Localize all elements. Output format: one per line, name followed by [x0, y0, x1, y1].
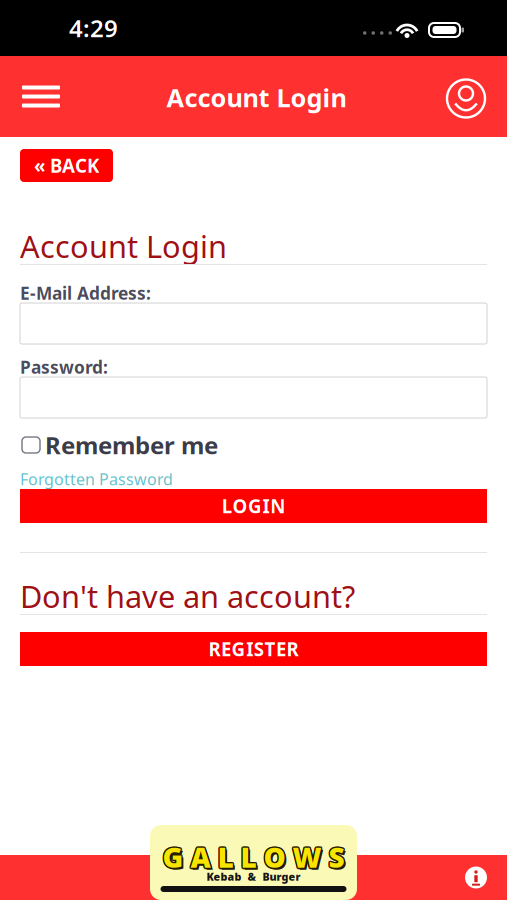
button[interactable]: Info — [462, 863, 490, 891]
staticText: REGISTER — [208, 637, 299, 661]
staticText: LOGIN — [222, 494, 285, 518]
staticText: Remember me — [45, 429, 218, 461]
staticText: G A L L O W S — [161, 838, 343, 876]
button[interactable]: Forgotten Password — [20, 472, 173, 486]
staticText: G A L L O W S — [164, 838, 346, 876]
staticText: « BACK — [34, 153, 99, 178]
staticText: 4:29 — [69, 12, 118, 44]
button[interactable]: « BACK — [20, 149, 113, 182]
staticText: Forgotten Password — [20, 468, 173, 490]
staticText: G A L L O W S — [161, 837, 343, 875]
staticText: G A L L O W S — [164, 840, 346, 878]
staticText: Kebab & Burger — [206, 869, 300, 884]
staticText: Account Login — [20, 226, 227, 266]
staticText: G A L L O W S — [162, 837, 344, 874]
button[interactable]: Remember me — [20, 435, 218, 455]
staticText: G A L L O W S — [161, 839, 343, 877]
button[interactable]: Account — [437, 65, 495, 127]
button[interactable]: LOGIN — [20, 489, 487, 523]
staticText: G A L L O W S — [163, 837, 345, 875]
staticText: E-Mail Address: — [20, 281, 151, 304]
staticText: Password: — [20, 355, 108, 378]
button[interactable]: Menu — [12, 65, 70, 127]
button[interactable]: REGISTER — [20, 632, 487, 666]
staticText: Account Login — [166, 81, 346, 114]
staticText: Don't have an account? — [20, 576, 355, 616]
staticText: G A L L O W S — [162, 840, 344, 877]
staticText: G A L L O W S — [162, 838, 344, 876]
